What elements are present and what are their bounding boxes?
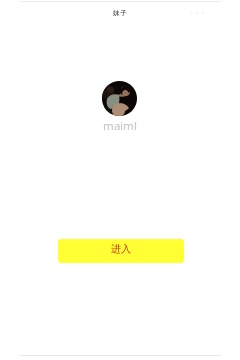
button[interactable]: 进入	[58, 239, 184, 263]
staticText: 妹子	[113, 9, 127, 17]
staticText: maiml	[103, 118, 137, 133]
staticText: 进入	[111, 243, 131, 255]
